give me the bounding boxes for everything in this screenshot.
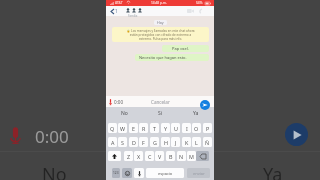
button[interactable]: Necesito que hagan esto.: [135, 54, 209, 61]
button[interactable]: E: [129, 123, 138, 133]
button[interactable]: Ya: [178, 107, 214, 119]
staticText: Pap osel.: [172, 46, 189, 51]
button[interactable]: Z: [124, 151, 133, 161]
button[interactable]: I: [182, 123, 191, 133]
staticText: Ya: [193, 110, 199, 117]
button[interactable]: S: [118, 137, 127, 147]
button[interactable]: Si: [142, 107, 178, 119]
staticText: L: [195, 139, 198, 146]
staticText: J: [175, 139, 177, 146]
button[interactable]: U: [171, 123, 180, 133]
button[interactable]: D: [129, 137, 138, 147]
button[interactable]: Back: [111, 8, 118, 14]
staticText: 54%: [196, 1, 203, 5]
button[interactable]: H: [161, 137, 170, 147]
staticText: No: [121, 110, 128, 117]
staticText: E: [132, 125, 135, 132]
button[interactable]: A: [108, 137, 117, 147]
staticText: K: [185, 139, 189, 146]
button[interactable]: V: [155, 151, 164, 161]
button[interactable]: O: [192, 123, 201, 133]
button[interactable]: Send: [187, 168, 210, 178]
button[interactable]: Hoy: [157, 20, 164, 25]
staticText: O: [194, 125, 199, 132]
staticText: 1: [115, 8, 118, 14]
button[interactable]: Ñ: [203, 137, 212, 147]
staticText: V: [158, 153, 162, 160]
button[interactable]: Record voice message: [9, 125, 69, 145]
staticText: espacio: [158, 171, 173, 176]
staticText: F: [142, 139, 145, 146]
button[interactable]: 🔒 Los mensajes y llamadas en este chat a…: [112, 27, 209, 42]
button[interactable]: T: [150, 123, 159, 133]
staticText: X: [137, 153, 141, 160]
button[interactable]: X: [134, 151, 143, 161]
button[interactable]: Emoji: [122, 168, 132, 178]
button[interactable]: [134, 168, 144, 178]
staticText: AT&T: [115, 1, 123, 5]
button[interactable]: Ya: [263, 162, 283, 180]
staticText: 0:00: [35, 125, 69, 145]
button[interactable]: Y: [161, 123, 170, 133]
button[interactable]: N: [177, 151, 186, 161]
staticText: Familia: [128, 14, 138, 18]
button[interactable]: Cancelar: [151, 99, 170, 105]
button[interactable]: Video call: [185, 8, 196, 14]
staticText: Ñ: [205, 139, 210, 146]
staticText: D: [132, 139, 136, 146]
staticText: C: [148, 153, 152, 160]
staticText: Z: [127, 153, 131, 160]
button[interactable]: W: [118, 123, 127, 133]
staticText: T: [153, 125, 156, 132]
staticText: B: [169, 153, 173, 160]
button[interactable]: R: [139, 123, 148, 133]
staticText: Necesito que hagan esto.: [139, 55, 187, 60]
button[interactable]: espacio: [146, 168, 184, 178]
staticText: P: [206, 125, 210, 132]
button[interactable]: Numbers: [112, 168, 120, 178]
button[interactable]: F: [139, 137, 148, 147]
staticText: H: [164, 139, 168, 146]
staticText: Y: [164, 125, 168, 132]
staticText: 123: [113, 171, 119, 175]
staticText: R: [142, 125, 146, 132]
button[interactable]: L: [192, 137, 201, 147]
staticText: 🔒 Los mensajes y llamadas en este chat a…: [125, 29, 196, 41]
button[interactable]: Play: [285, 123, 308, 146]
button[interactable]: C: [145, 151, 154, 161]
button[interactable]: Backspace: [196, 151, 209, 161]
staticText: U: [174, 125, 178, 132]
button[interactable]: Q: [108, 123, 117, 133]
button[interactable]: P: [203, 123, 212, 133]
button[interactable]: M: [187, 151, 196, 161]
staticText: M: [189, 153, 194, 160]
staticText: I: [186, 125, 188, 132]
staticText: W: [120, 125, 126, 132]
button[interactable]: Call: [197, 8, 208, 14]
staticText: Hoy: [157, 20, 164, 25]
staticText: G: [153, 139, 157, 146]
button[interactable]: B: [166, 151, 175, 161]
staticText: 14:48 p.m.: [151, 1, 167, 5]
button[interactable]: No: [106, 107, 142, 119]
staticText: 0:00: [114, 99, 124, 105]
staticText: A: [111, 139, 115, 146]
button[interactable]: K: [182, 137, 191, 147]
staticText: S: [121, 139, 124, 146]
button[interactable]: Send: [200, 100, 210, 110]
button[interactable]: No: [42, 162, 67, 180]
staticText: Q: [110, 125, 115, 132]
staticText: enviar: [193, 171, 205, 176]
button[interactable]: Shift: [108, 151, 121, 161]
button[interactable]: J: [171, 137, 180, 147]
button[interactable]: Pap osel.: [162, 45, 209, 52]
button[interactable]: G: [150, 137, 159, 147]
staticText: N: [179, 153, 184, 160]
staticText: Si: [158, 110, 163, 117]
